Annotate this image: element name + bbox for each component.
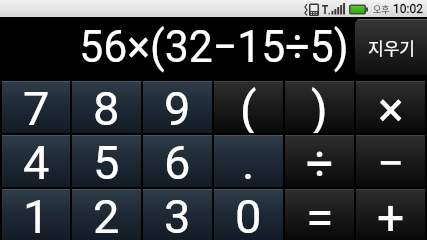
staticText: −	[377, 135, 405, 187]
button[interactable]: ×	[356, 81, 425, 133]
staticText: 2	[93, 189, 120, 240]
button[interactable]: (	[214, 81, 283, 133]
button[interactable]: .	[214, 135, 283, 187]
staticText: 1	[23, 189, 50, 240]
button[interactable]: 5	[72, 135, 141, 187]
staticText: 오후	[373, 3, 390, 16]
button[interactable]: +	[356, 189, 425, 240]
button[interactable]: ÷	[285, 135, 354, 187]
staticText: 6	[164, 135, 191, 187]
button[interactable]: 2	[72, 189, 141, 240]
button[interactable]: 9	[143, 81, 212, 133]
button[interactable]: 1	[2, 189, 70, 240]
staticText: 7	[23, 81, 50, 133]
staticText: +	[377, 189, 405, 240]
button[interactable]: 지우기	[355, 19, 427, 75]
staticText: 0	[235, 189, 262, 240]
staticText: 5	[93, 135, 120, 187]
button[interactable]: 0	[214, 189, 283, 240]
staticText: 56×(32−15÷5)	[79, 20, 349, 73]
staticText: ×	[378, 81, 404, 133]
button[interactable]: )	[285, 81, 354, 133]
staticText: 9	[164, 81, 191, 133]
staticText: 4	[23, 135, 50, 187]
staticText: 10:02	[393, 2, 423, 16]
button[interactable]: 8	[72, 81, 141, 133]
button[interactable]: 6	[143, 135, 212, 187]
staticText: =	[306, 189, 334, 240]
button[interactable]: 3	[143, 189, 212, 240]
staticText: (	[240, 81, 257, 133]
staticText: 3	[164, 189, 191, 240]
staticText: 8	[93, 81, 120, 133]
button[interactable]: =	[285, 189, 354, 240]
staticText: ÷	[306, 135, 334, 187]
button[interactable]: −	[356, 135, 425, 187]
staticText: )	[311, 81, 328, 133]
button[interactable]: 4	[2, 135, 70, 187]
button[interactable]: 7	[2, 81, 70, 133]
staticText: .	[242, 135, 255, 187]
staticText: 지우기	[368, 35, 415, 60]
